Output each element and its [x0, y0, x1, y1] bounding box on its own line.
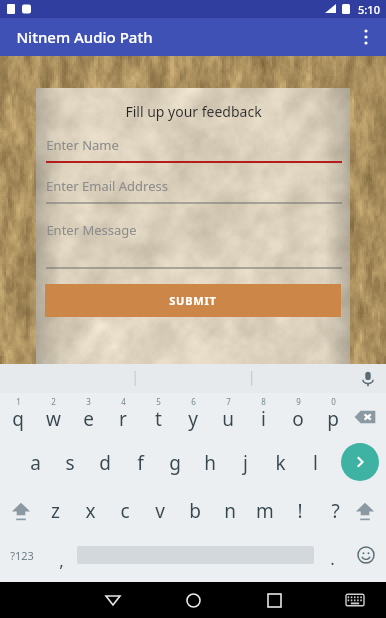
button[interactable]: x — [73, 489, 107, 533]
staticText: d — [99, 450, 111, 476]
button[interactable]: Recents — [254, 582, 294, 618]
button[interactable]: Enter Email Address — [46, 175, 342, 204]
staticText: 6 — [191, 396, 196, 407]
button[interactable]: d — [88, 441, 122, 485]
button[interactable]: Back — [93, 582, 133, 618]
staticText: e — [83, 406, 94, 432]
staticText: k — [275, 450, 286, 476]
button[interactable]: Shift — [3, 489, 39, 533]
button[interactable]: 5 — [141, 393, 175, 440]
staticText: 4 — [121, 396, 126, 407]
staticText: 7 — [226, 396, 231, 407]
button[interactable]: n — [213, 489, 247, 533]
button[interactable]: . — [318, 535, 346, 575]
staticText: m — [256, 498, 274, 524]
staticText: . — [330, 547, 335, 570]
staticText: y — [188, 406, 198, 432]
button[interactable]: ? — [318, 489, 352, 533]
staticText: h — [204, 450, 216, 476]
staticText: n — [224, 498, 236, 524]
staticText: 0 — [331, 396, 336, 407]
button[interactable]: 8 — [246, 393, 280, 440]
staticText: 8 — [261, 396, 266, 407]
staticText: a — [30, 450, 41, 476]
staticText: Enter Email Address — [46, 177, 168, 195]
staticText: v — [155, 498, 165, 524]
button[interactable]: Shift — [347, 489, 383, 533]
button[interactable]: 6 — [176, 393, 210, 440]
button[interactable]: Home — [173, 582, 213, 618]
button[interactable]: 3 — [71, 393, 105, 440]
staticText: p — [327, 406, 339, 432]
button[interactable]: Emoji — [350, 535, 382, 575]
button[interactable]: j — [228, 441, 262, 485]
staticText: w — [46, 406, 61, 432]
staticText: 5:10 — [358, 2, 380, 17]
staticText: j — [243, 450, 248, 476]
staticText: l — [313, 450, 318, 476]
staticText: s — [65, 450, 75, 476]
staticText: g — [169, 450, 181, 476]
button[interactable]: m — [248, 489, 282, 533]
button[interactable]: Next — [341, 443, 379, 481]
button[interactable]: l — [298, 441, 332, 485]
button[interactable]: Backspace — [348, 401, 382, 433]
staticText: r — [119, 406, 127, 432]
staticText: ? — [331, 498, 340, 524]
staticText: ?123 — [10, 548, 34, 563]
button[interactable]: g — [158, 441, 192, 485]
staticText: SUBMIT — [169, 293, 217, 308]
button[interactable]: f — [123, 441, 157, 485]
staticText: o — [292, 406, 304, 432]
button[interactable]: a — [18, 441, 52, 485]
staticText: Fill up your feedback — [125, 102, 262, 121]
staticText: b — [189, 498, 201, 524]
button[interactable]: ?123 — [2, 535, 42, 575]
staticText: f — [137, 450, 144, 476]
button[interactable]: Enter Message — [46, 221, 342, 269]
staticText: 5 — [156, 396, 161, 407]
staticText: 9 — [296, 396, 301, 407]
button[interactable]: More options — [346, 18, 386, 56]
staticText: , — [59, 549, 64, 572]
button[interactable]: k — [263, 441, 297, 485]
button[interactable]: z — [38, 489, 72, 533]
staticText: Enter Message — [46, 221, 137, 239]
button[interactable]: 7 — [211, 393, 245, 440]
staticText: u — [222, 406, 234, 432]
button[interactable]: Enter Name — [46, 134, 342, 163]
button[interactable]: 2 — [36, 393, 70, 440]
button[interactable]: , — [46, 535, 76, 575]
button[interactable]: c — [108, 489, 142, 533]
staticText: 2 — [51, 396, 56, 407]
staticText: Nitnem Audio Path — [16, 27, 153, 47]
staticText: x — [85, 498, 96, 524]
staticText: i — [261, 406, 266, 432]
button[interactable]: 4 — [106, 393, 140, 440]
staticText: 3 — [86, 396, 91, 407]
staticText: c — [120, 498, 130, 524]
staticText: Enter Name — [46, 136, 119, 154]
button[interactable]: Voice input — [350, 364, 386, 393]
button[interactable]: h — [193, 441, 227, 485]
button[interactable]: ! — [283, 489, 317, 533]
staticText: 1 — [16, 396, 21, 407]
staticText: z — [51, 498, 60, 524]
button[interactable]: v — [143, 489, 177, 533]
staticText: t — [155, 406, 162, 432]
staticText: ! — [297, 498, 303, 524]
button[interactable]: SUBMIT — [45, 284, 341, 317]
button[interactable]: s — [53, 441, 87, 485]
button[interactable]: 0 — [316, 393, 350, 440]
button[interactable]: b — [178, 489, 212, 533]
button[interactable]: 9 — [281, 393, 315, 440]
button[interactable]: Switch keyboard — [337, 582, 373, 618]
staticText: q — [12, 406, 24, 432]
button[interactable]: 1 — [1, 393, 35, 440]
